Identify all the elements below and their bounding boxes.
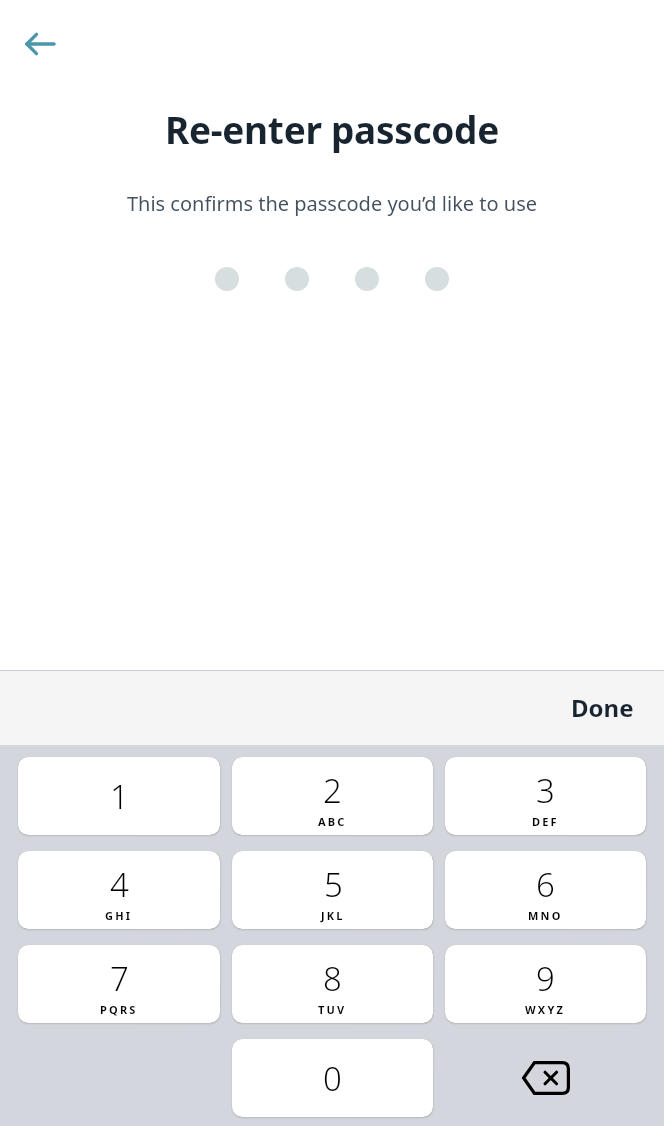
staticText: Done [571, 691, 634, 724]
button[interactable]: 2 [232, 757, 433, 835]
staticText: 5 [324, 862, 343, 907]
staticText: 7 [110, 956, 129, 1001]
staticText: 0 [323, 1056, 342, 1101]
staticText: This confirms the passcode you’d like to… [74, 190, 590, 217]
button[interactable]: 6 [445, 851, 646, 929]
button[interactable]: 9 [445, 945, 646, 1023]
button[interactable]: 0 [232, 1039, 433, 1117]
staticText: 1 [110, 774, 129, 819]
staticText: JKL [321, 908, 345, 923]
staticText: GHI [105, 908, 133, 923]
button[interactable]: 5 [232, 851, 433, 929]
staticText: 9 [536, 956, 555, 1001]
staticText: 4 [110, 862, 129, 907]
staticText: ABC [318, 814, 347, 829]
button[interactable]: 7 [18, 945, 220, 1023]
staticText: PQRS [100, 1002, 138, 1017]
button[interactable]: Done [541, 679, 664, 736]
staticText: 8 [323, 956, 342, 1001]
staticText: MNO [528, 908, 563, 923]
staticText: 3 [536, 768, 555, 813]
staticText: DEF [532, 814, 559, 829]
staticText: 2 [323, 768, 342, 813]
staticText: WXYZ [525, 1002, 566, 1017]
staticText: TUV [318, 1002, 347, 1017]
button[interactable]: 1 [18, 757, 220, 835]
button[interactable]: 4 [18, 851, 220, 929]
button[interactable]: 3 [445, 757, 646, 835]
button[interactable]: 8 [232, 945, 433, 1023]
staticText: 6 [536, 862, 555, 907]
button[interactable]: Backspace [445, 1039, 646, 1117]
button[interactable]: Back [12, 16, 68, 72]
staticText: Re-enter passcode [0, 104, 664, 154]
